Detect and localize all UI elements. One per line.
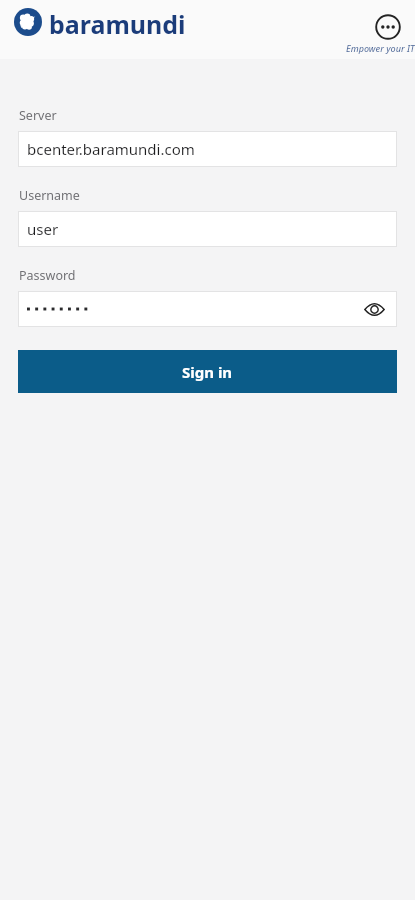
staticText: Username	[19, 187, 80, 204]
staticText: Empower your IT	[346, 42, 415, 54]
staticText: bcenter.baramundi.com	[27, 139, 195, 159]
staticText: user	[27, 219, 59, 239]
staticText: baramundi	[49, 7, 186, 41]
button[interactable]: bcenter.baramundi.com	[18, 131, 397, 167]
button[interactable]: user	[18, 211, 397, 247]
button[interactable]: More options	[371, 10, 405, 44]
staticText: Sign in	[182, 362, 233, 382]
staticText: Server	[19, 107, 57, 124]
button[interactable]: Show password	[18, 291, 397, 327]
button[interactable]: Show password	[359, 294, 389, 324]
button[interactable]: Sign in	[18, 350, 397, 393]
staticText: Password	[19, 267, 76, 284]
